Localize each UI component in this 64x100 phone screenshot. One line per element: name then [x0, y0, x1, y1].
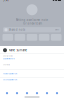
staticText: 9:41 — [3, 0, 10, 2]
button[interactable]: Toolbar action — [32, 91, 42, 95]
staticText: Shared note — [9, 28, 26, 31]
button[interactable]: Toolbar action — [52, 91, 62, 95]
button[interactable]: Share target — [2, 34, 13, 41]
button[interactable]: Name Surname — [0, 47, 64, 53]
staticText: a blue link line here — [3, 58, 15, 60]
button[interactable]: second blue link row — [0, 79, 64, 81]
button[interactable]: Another blue link row — [0, 73, 64, 75]
staticText: second blue link row — [3, 79, 17, 81]
staticText: short note — [3, 64, 10, 65]
button[interactable]: Toolbar action — [42, 91, 52, 95]
staticText: Another blue link row — [3, 73, 17, 75]
button[interactable]: Toolbar action — [22, 91, 32, 95]
button[interactable]: Toolbar action — [2, 91, 12, 95]
staticText: for a new team — [22, 22, 41, 25]
staticText: Short grey line — [3, 55, 13, 57]
button[interactable]: Share target — [51, 34, 61, 41]
button[interactable]: Shared note — [0, 27, 64, 32]
staticText: Writing a welcome note — [15, 18, 48, 22]
staticText: Name Surname — [9, 48, 28, 52]
staticText: Options — [54, 29, 59, 31]
button[interactable]: Toolbar action — [12, 91, 22, 95]
